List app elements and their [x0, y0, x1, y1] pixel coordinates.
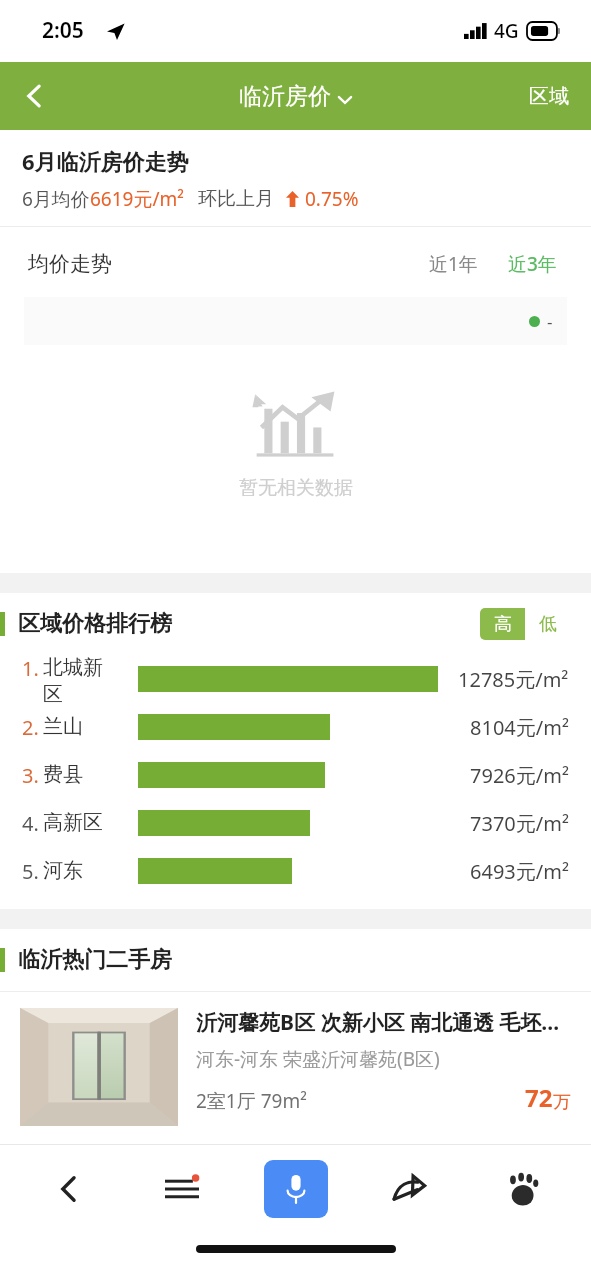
staticText: 高: [494, 613, 512, 636]
staticText: 4.: [22, 810, 39, 837]
staticText: 河东-河东 荣盛沂河馨苑(B区): [196, 1046, 440, 1072]
button[interactable]: 3.: [0, 751, 591, 799]
staticText: 河东: [43, 858, 83, 883]
button[interactable]: 低: [525, 608, 570, 640]
staticText: 临沂热门二手房: [18, 946, 172, 974]
staticText: 均价走势: [28, 251, 112, 277]
staticText: 费县: [43, 762, 83, 787]
button[interactable]: Share: [364, 1145, 454, 1233]
staticText: 高新区: [43, 810, 103, 835]
staticText: 万: [553, 1091, 571, 1114]
button[interactable]: 近3年: [502, 247, 563, 281]
staticText: 2:05: [42, 16, 84, 45]
staticText: 4G: [494, 18, 519, 44]
button[interactable]: 区域: [517, 70, 581, 123]
button[interactable]: 沂河馨苑B区 次新小区 南北通透 毛坯…: [0, 992, 591, 1142]
button[interactable]: 高: [480, 608, 525, 640]
button[interactable]: 5.: [0, 847, 591, 895]
staticText: 区域价格排行榜: [18, 610, 172, 638]
staticText: 兰山: [43, 714, 83, 739]
button[interactable]: Voice search: [251, 1145, 341, 1233]
staticText: 环比上月: [198, 187, 274, 211]
staticText: -: [547, 310, 553, 333]
staticText: 0.75%: [305, 186, 359, 212]
button[interactable]: 临沂房价: [239, 82, 353, 111]
button[interactable]: Back: [24, 1145, 114, 1233]
staticText: 低: [539, 613, 557, 636]
staticText: 3.: [22, 762, 39, 789]
button[interactable]: Back: [0, 62, 70, 130]
button[interactable]: Menu: [137, 1145, 227, 1233]
staticText: 北城新区: [43, 655, 118, 703]
staticText: 区域: [529, 84, 569, 109]
staticText: 暂无相关数据: [239, 476, 353, 500]
staticText: 近3年: [508, 251, 557, 277]
staticText: 6619元/m²: [90, 186, 184, 212]
staticText: 近1年: [429, 251, 478, 277]
staticText: 6493元/m²: [470, 858, 569, 885]
staticText: 沂河馨苑B区 次新小区 南北通透 毛坯…: [196, 1008, 560, 1037]
staticText: 临沂房价: [239, 82, 331, 111]
button[interactable]: 近1年: [423, 247, 484, 281]
button[interactable]: Baidu home: [478, 1145, 568, 1233]
staticText: 8104元/m²: [470, 714, 569, 741]
staticText: 12785元/m²: [458, 666, 569, 693]
button[interactable]: 1.: [0, 655, 591, 703]
staticText: 2室1厅 79m²: [196, 1088, 307, 1114]
staticText: 7926元/m²: [470, 762, 569, 789]
staticText: 6月临沂房价走势: [22, 146, 189, 176]
button[interactable]: 2.: [0, 703, 591, 751]
staticText: 6月均价: [22, 186, 90, 212]
staticText: 1.: [22, 655, 39, 682]
button[interactable]: 4.: [0, 799, 591, 847]
staticText: 5.: [22, 858, 39, 885]
staticText: 7370元/m²: [470, 810, 569, 837]
staticText: 2.: [22, 714, 39, 741]
staticText: 72: [525, 1081, 553, 1114]
